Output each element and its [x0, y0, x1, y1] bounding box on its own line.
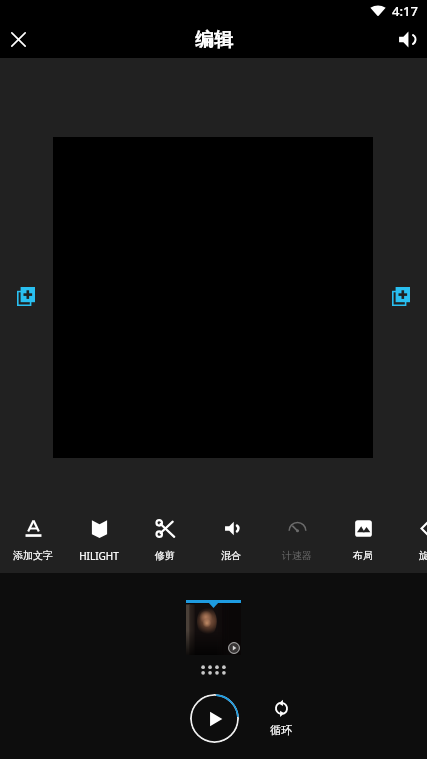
staticText: 混合: [221, 549, 241, 562]
button[interactable]: Volume: [387, 22, 427, 58]
button[interactable]: 循环: [261, 699, 301, 737]
staticText: 4:17: [392, 2, 418, 20]
button[interactable]: 添加文字: [0, 508, 66, 566]
button[interactable]: 旋转: [396, 508, 427, 566]
button[interactable]: Play: [190, 694, 239, 743]
staticText: 循环: [270, 723, 292, 737]
button[interactable]: 修剪: [132, 508, 198, 566]
button[interactable]: HILIGHT: [66, 508, 132, 566]
button[interactable]: Reorder clips: [200, 663, 227, 677]
staticText: HILIGHT: [79, 549, 119, 563]
staticText: 添加文字: [13, 549, 53, 562]
staticText: 修剪: [155, 549, 175, 562]
staticText: 布局: [353, 549, 373, 562]
button[interactable]: 混合: [198, 508, 264, 566]
staticText: 编辑: [195, 28, 233, 52]
button[interactable]: Add clip before: [12, 282, 40, 310]
button[interactable]: 计速器: [264, 508, 330, 566]
button[interactable]: Add clip after: [387, 282, 415, 310]
staticText: 计速器: [282, 549, 312, 562]
staticText: 旋转: [419, 549, 427, 562]
button[interactable]: Close: [0, 22, 36, 58]
button[interactable]: 布局: [330, 508, 396, 566]
